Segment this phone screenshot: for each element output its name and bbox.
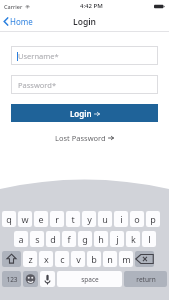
staticText: u [102,213,108,225]
staticText: m [122,253,131,265]
button[interactable]: n [103,251,117,267]
button[interactable]: s [30,231,44,247]
staticText: d [50,233,56,245]
button[interactable]: t [66,211,80,227]
button[interactable]: o [130,211,144,227]
staticText: b [91,253,97,265]
button[interactable]: v [71,251,85,267]
staticText: Login [73,16,97,28]
staticText: r [55,213,59,225]
staticText: p [150,213,156,225]
button[interactable]: u [98,211,112,227]
button[interactable]: q [2,211,16,227]
button[interactable]: j [110,231,124,247]
button[interactable]: Dictation [40,271,55,287]
button[interactable]: Password* [11,75,158,94]
staticText: e [38,213,44,225]
button[interactable]: c [55,251,69,267]
button[interactable]: g [78,231,92,247]
staticText: 123 [6,275,18,284]
staticText: s [35,233,40,245]
button[interactable]: d [46,231,60,247]
staticText: q [6,213,12,225]
staticText: space [81,275,99,284]
button[interactable]: space [57,271,122,287]
button[interactable]: p [146,211,160,227]
button[interactable]: return [124,271,167,287]
button[interactable]: w [18,211,32,227]
button[interactable]: h [94,231,108,247]
button[interactable]: f [62,231,76,247]
staticText: f [67,233,71,245]
staticText: z [28,253,33,265]
staticText: Home [10,16,33,27]
staticText: Carrier [4,3,23,10]
staticText: y [87,213,92,225]
staticText: c [60,253,65,265]
staticText: k [131,233,136,245]
staticText: Username* [18,51,59,61]
button[interactable]: x [39,251,53,267]
button[interactable]: b [87,251,101,267]
button[interactable]: z [23,251,37,267]
button[interactable]: Shift [2,251,21,267]
button[interactable]: l [142,231,156,247]
button[interactable]: Home [0,14,37,29]
staticText: n [107,253,113,265]
staticText: h [98,233,104,245]
staticText: return [136,275,156,284]
button[interactable]: i [114,211,128,227]
button[interactable]: r [50,211,64,227]
staticText: j [116,233,119,245]
button[interactable]: m [119,251,133,267]
staticText: x [44,253,49,265]
button[interactable]: e [34,211,48,227]
staticText: a [18,233,24,245]
button[interactable]: Backspace [135,251,154,267]
staticText: g [82,233,88,245]
button[interactable]: k [126,231,140,247]
staticText: i [120,213,123,225]
staticText: Lost Password [55,133,106,143]
button[interactable]: Emoji [23,271,38,287]
button[interactable]: Login [11,104,158,122]
button[interactable]: y [82,211,96,227]
staticText: t [71,213,75,225]
staticText: 4:42 PM [80,2,103,10]
button[interactable]: a [14,231,28,247]
staticText: Password* [18,80,57,90]
button[interactable]: 123 [2,271,21,287]
staticText: l [148,233,151,245]
staticText: v [76,253,81,265]
staticText: o [134,213,140,225]
button[interactable]: Lost Password [49,131,120,145]
button[interactable]: Username* [11,46,158,65]
staticText: Login [70,108,92,119]
staticText: w [21,213,29,225]
